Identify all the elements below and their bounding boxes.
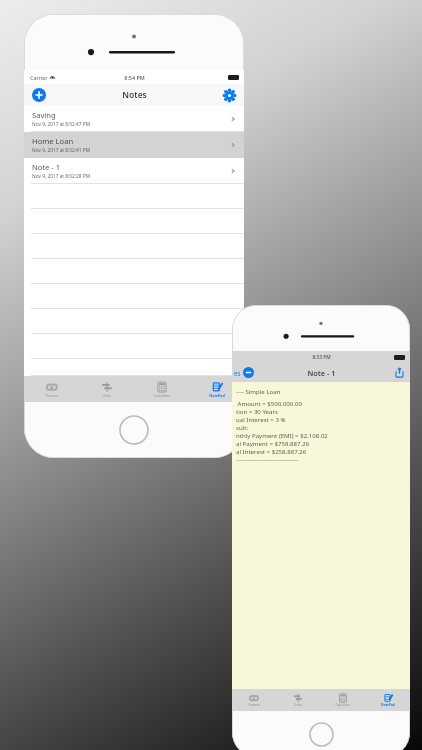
staticText: NotePad	[209, 393, 225, 398]
button[interactable]: NotePad	[365, 693, 410, 707]
staticText: Calculator	[153, 393, 171, 398]
staticText: Saving	[32, 110, 56, 120]
button[interactable]: Add note	[32, 88, 46, 102]
staticText: 8:54 PM	[124, 74, 145, 81]
staticText: sult:	[236, 423, 249, 431]
button[interactable]: NotePad	[189, 381, 244, 398]
staticText: al Interest = $258,887.26	[236, 447, 307, 455]
button[interactable]: Delete	[243, 367, 254, 378]
staticText: es	[234, 369, 241, 377]
staticText: Note - 1	[32, 162, 61, 172]
button[interactable]: Home Loan	[24, 132, 244, 158]
staticText: nthly Payment (EMI) = $2,108.02	[236, 431, 328, 439]
staticText: tion = 30 Years	[236, 407, 278, 415]
button[interactable]: Settings	[223, 89, 236, 102]
staticText: NotePad	[381, 703, 395, 707]
button[interactable]: Calculator	[320, 693, 365, 707]
staticText: Nov 9, 2017 at 8:52:47 PM	[32, 121, 91, 128]
button[interactable]: Calculator	[134, 381, 189, 398]
button[interactable]: Units	[79, 381, 134, 398]
staticText: Note - 1	[307, 368, 336, 378]
staticText: Units	[294, 703, 302, 707]
staticText: al Payment = $758,887.26	[236, 439, 310, 447]
staticText: Amount = $500,000.00	[236, 399, 302, 407]
staticText: --------------------------------	[236, 455, 299, 463]
button[interactable]: Finance	[232, 693, 276, 707]
button[interactable]: Saving	[24, 106, 244, 132]
staticText: Carrier	[30, 74, 48, 81]
staticText: Home Loan	[32, 136, 74, 146]
staticText: ---- Simple Loan	[236, 387, 281, 395]
staticText: Notes	[122, 89, 147, 101]
staticText: Finance	[248, 703, 260, 707]
staticText: Calculator	[335, 703, 351, 707]
staticText: Nov 9, 2017 at 8:52:41 PM	[32, 147, 91, 154]
button[interactable]: Finance	[24, 381, 79, 398]
staticText: ual Interest = 3 %	[236, 415, 286, 423]
staticText: Finance	[45, 393, 59, 398]
staticText: Units	[102, 393, 111, 398]
button[interactable]: Share	[394, 367, 405, 378]
button[interactable]: Note - 1	[24, 158, 244, 184]
staticText: Nov 9, 2017 at 8:02:28 PM	[32, 173, 91, 180]
staticText: 8:53 PM	[312, 354, 331, 361]
button[interactable]: Units	[276, 693, 320, 707]
